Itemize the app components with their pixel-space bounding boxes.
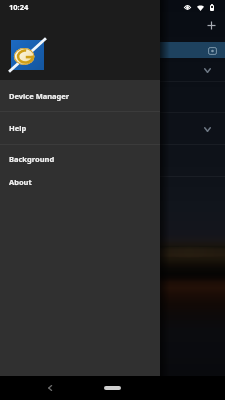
button[interactable]: About bbox=[0, 170, 160, 193]
button[interactable]: Help bbox=[0, 112, 160, 144]
button[interactable]: Back bbox=[42, 380, 58, 396]
button[interactable]: Background bbox=[0, 147, 160, 170]
button[interactable]: Capture bbox=[0, 42, 225, 58]
button[interactable]: Device Manager bbox=[0, 80, 160, 111]
other: Capture bbox=[207, 45, 218, 56]
staticText: 10:24 bbox=[9, 2, 29, 12]
staticText: Device Manager bbox=[9, 91, 70, 101]
button[interactable]: Add bbox=[202, 16, 220, 34]
other: Expand bbox=[201, 123, 213, 135]
button[interactable]: Expand bbox=[0, 113, 225, 144]
other: Expand bbox=[201, 64, 213, 76]
staticText: About bbox=[9, 177, 32, 187]
button[interactable] bbox=[0, 82, 225, 112]
staticText: Background bbox=[9, 154, 55, 164]
button[interactable]: Expand bbox=[0, 58, 225, 81]
button[interactable] bbox=[0, 145, 225, 176]
staticText: Help bbox=[9, 123, 27, 133]
